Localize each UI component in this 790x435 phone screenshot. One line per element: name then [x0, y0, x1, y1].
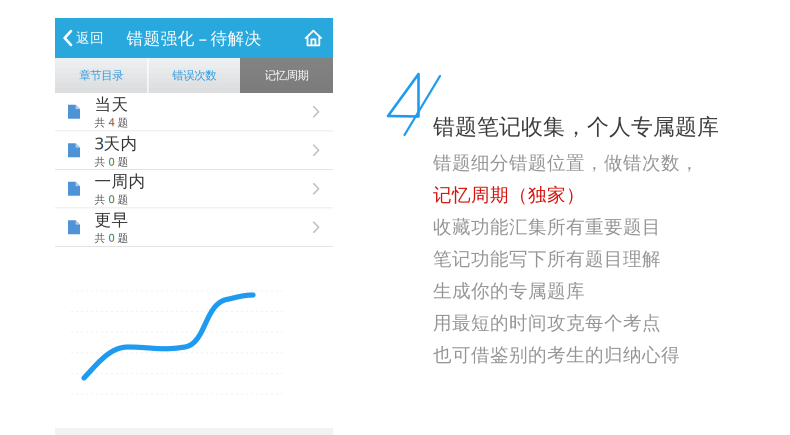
button[interactable]: 错误次数 — [148, 58, 240, 93]
button[interactable]: 记忆周期 — [240, 58, 333, 93]
staticText: 记忆周期（独家） — [433, 183, 585, 207]
staticText: 生成你的专属题库 — [433, 279, 585, 303]
button[interactable]: 一周内 — [55, 170, 333, 207]
button[interactable]: 更早 — [55, 208, 333, 246]
staticText: 返回 — [76, 29, 104, 46]
staticText: 笔记功能写下所有题目理解 — [433, 247, 661, 271]
button[interactable]: 3天内 — [55, 131, 333, 169]
staticText: 共 4 题 — [94, 115, 128, 129]
staticText: 记忆周期 — [264, 68, 308, 83]
button[interactable]: 当天 — [55, 93, 333, 130]
button[interactable]: 首页 — [305, 18, 333, 58]
button[interactable]: 返回 — [55, 18, 104, 58]
staticText: 章节目录 — [79, 68, 123, 83]
staticText: 共 0 题 — [94, 154, 128, 169]
staticText: 共 0 题 — [94, 230, 128, 245]
staticText: 错题细分错题位置，做错次数， — [433, 151, 699, 175]
staticText: 收藏功能汇集所有重要题目 — [433, 215, 661, 239]
staticText: 更早 — [94, 210, 128, 230]
staticText: 也可借鉴别的考生的归纳心得 — [433, 343, 680, 367]
staticText: 3天内 — [94, 132, 137, 154]
staticText: 一周内 — [94, 171, 145, 192]
staticText: 错题笔记收集，个人专属题库 — [433, 113, 719, 141]
staticText: 用最短的时间攻克每个考点 — [433, 311, 661, 335]
button[interactable]: 章节目录 — [55, 58, 147, 93]
staticText: 当天 — [94, 94, 128, 115]
staticText: 错误次数 — [172, 68, 216, 83]
staticText: 错题强化 – 待解决 — [126, 27, 261, 49]
staticText: 共 0 题 — [94, 192, 128, 206]
